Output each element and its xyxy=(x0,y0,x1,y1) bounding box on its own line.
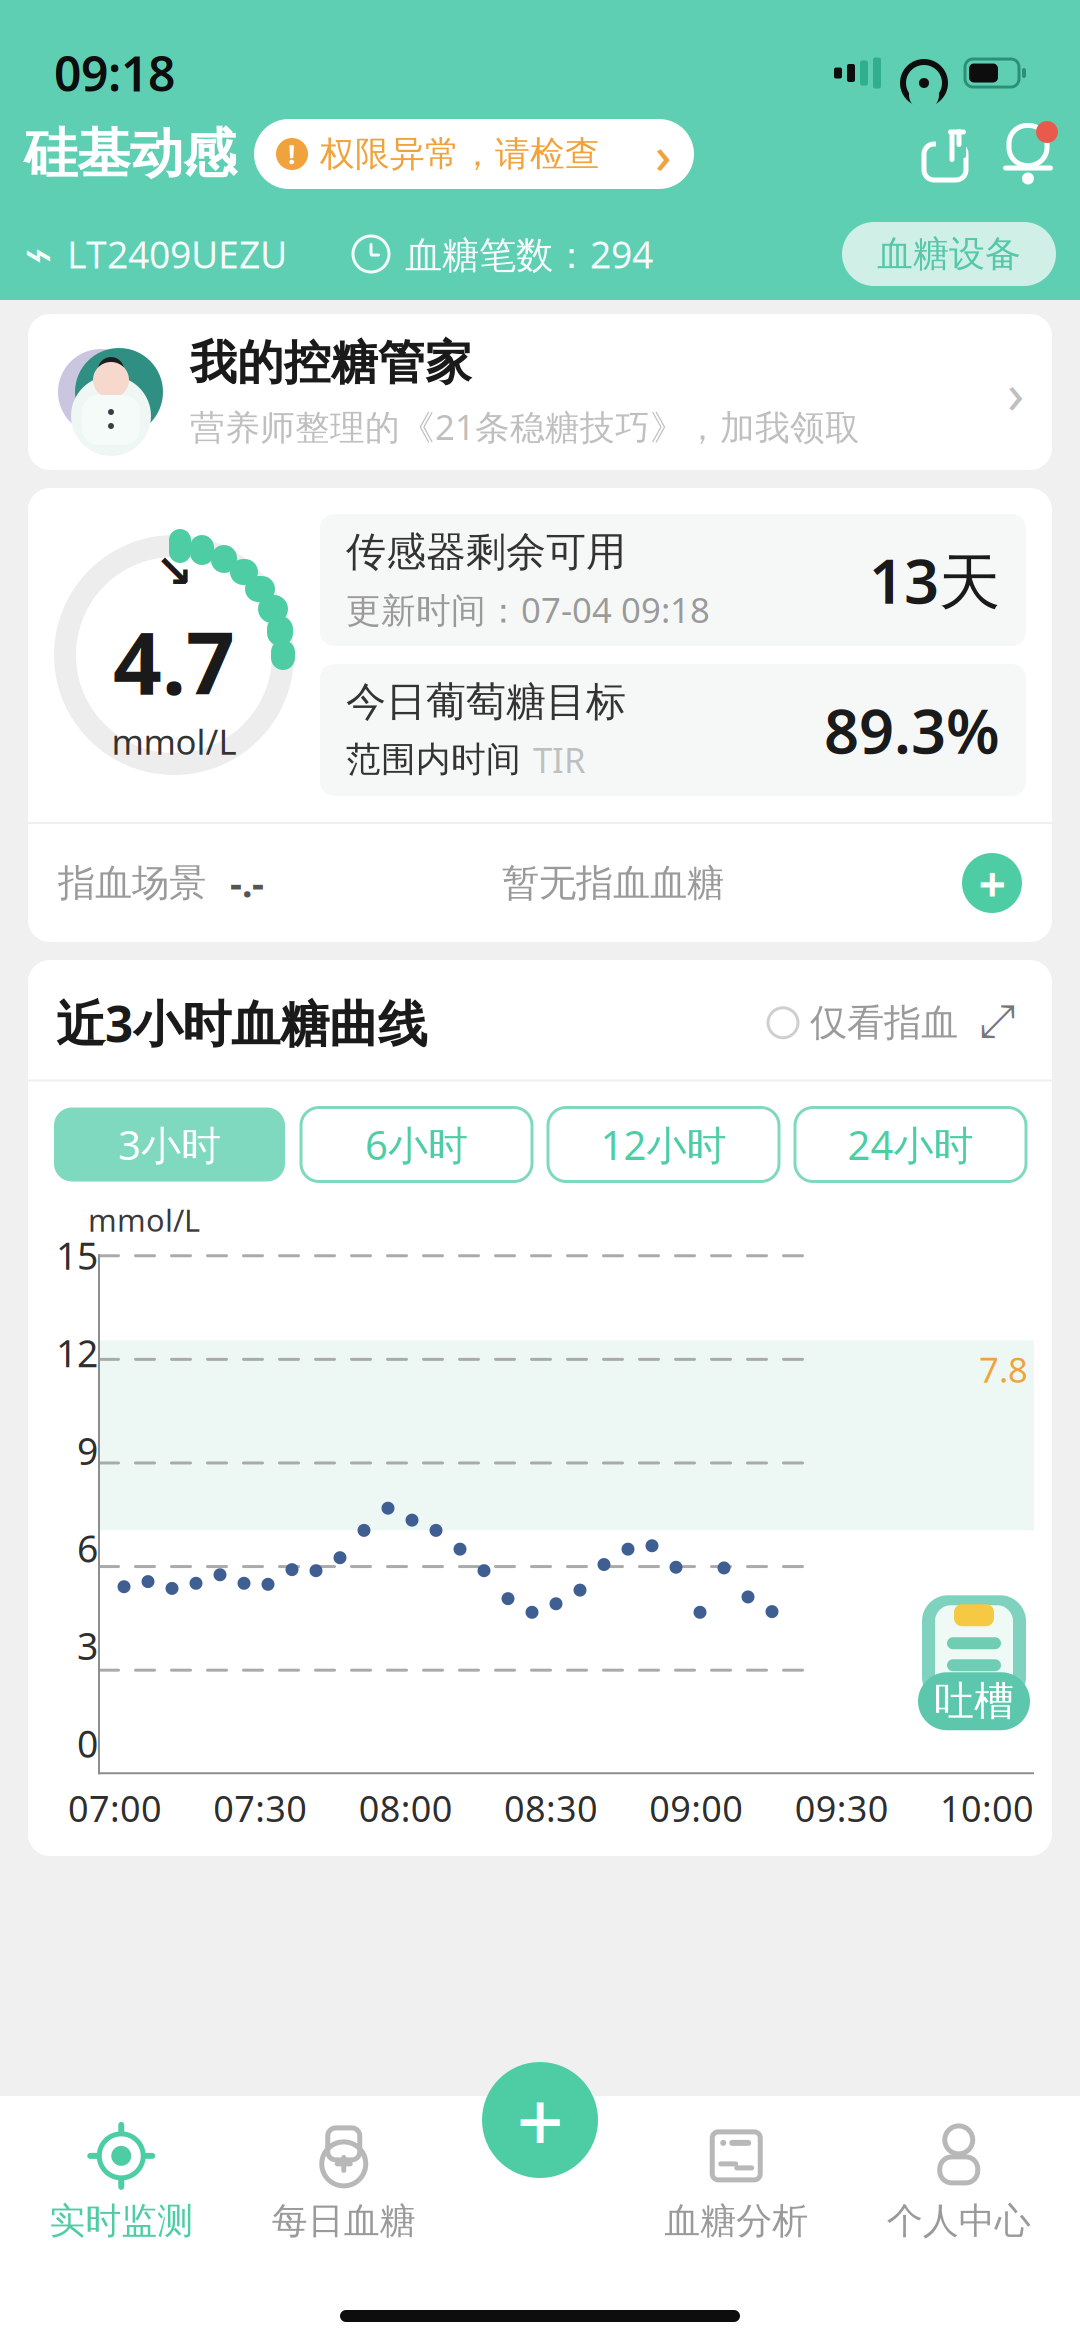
staticText: LT2409UEZU xyxy=(67,229,287,279)
button[interactable]: 通知 xyxy=(1000,124,1056,184)
staticText: 暂无指血血糖 xyxy=(502,860,724,906)
staticText: 10:00 xyxy=(940,1784,1034,1832)
staticText: 今日葡萄糖目标 xyxy=(346,677,626,726)
button[interactable]: 12小时 xyxy=(548,1107,779,1181)
button[interactable]: ! xyxy=(254,119,694,189)
button[interactable]: 我的控糖管家 xyxy=(28,314,1052,470)
staticText: 血糖设备 xyxy=(877,232,1021,276)
staticText: 6小时 xyxy=(365,1118,468,1171)
staticText: ! xyxy=(288,136,296,172)
staticText: 硅基动感 xyxy=(24,121,236,187)
staticText: 血糖分析 xyxy=(664,2199,808,2243)
button[interactable]: 添加记录 xyxy=(482,2062,598,2178)
staticText: 13天 xyxy=(869,539,1000,621)
staticText: 每日血糖 xyxy=(272,2199,416,2243)
staticText: 3 xyxy=(77,1621,98,1670)
button[interactable]: 分享 xyxy=(918,127,972,181)
staticText: TIR xyxy=(533,736,586,782)
staticText: 07:00 xyxy=(68,1784,162,1832)
staticText: 3小时 xyxy=(118,1118,221,1171)
staticText: › xyxy=(655,120,672,188)
staticText: 09:30 xyxy=(795,1784,889,1832)
staticText: 近3小时血糖曲线 xyxy=(56,990,427,1055)
staticText: 4.7 xyxy=(113,605,235,718)
staticText: 12 xyxy=(56,1328,98,1378)
staticText: 08:00 xyxy=(359,1784,453,1832)
staticText: ⌁ xyxy=(24,227,53,281)
staticText: 个人中心 xyxy=(887,2199,1031,2243)
staticText: 12小时 xyxy=(600,1118,726,1171)
button[interactable]: 每日血糖 xyxy=(232,2120,455,2250)
button[interactable]: 仅看指血 xyxy=(768,1000,958,1046)
button[interactable]: 指血场景 xyxy=(28,824,1052,942)
button[interactable]: 实时监测 xyxy=(10,2120,232,2250)
staticText: 24小时 xyxy=(847,1118,973,1171)
staticText: 0 xyxy=(77,1718,98,1768)
staticText: 吐槽 xyxy=(934,1677,1014,1726)
staticText: + xyxy=(978,851,1005,915)
staticText: 09:00 xyxy=(649,1784,743,1832)
staticText: 营养师整理的《21条稳糖技巧》，加我领取 xyxy=(190,404,860,450)
staticText: › xyxy=(1007,355,1024,429)
button[interactable]: 24小时 xyxy=(795,1107,1026,1181)
staticText: 血糖笔数：294 xyxy=(405,229,653,279)
staticText: + xyxy=(516,2065,563,2175)
staticText: 传感器剩余可用 xyxy=(346,527,626,576)
staticText: 89.3% xyxy=(824,689,1000,771)
staticText: 实时监测 xyxy=(49,2199,193,2243)
staticText: 08:30 xyxy=(504,1784,598,1832)
staticText: 权限异常，请检查 xyxy=(320,133,600,175)
staticText: 范围内时间 xyxy=(346,738,521,781)
button[interactable]: 全屏查看 xyxy=(970,996,1024,1050)
staticText: 09:18 xyxy=(54,41,175,105)
staticText: 3.9 xyxy=(979,1610,1028,1656)
staticText: 指血场景 xyxy=(58,860,206,906)
staticText: 更新时间：07-04 09:18 xyxy=(346,586,710,632)
staticText: 7.8 xyxy=(979,1346,1028,1392)
button[interactable]: 血糖分析 xyxy=(625,2120,847,2250)
staticText: 6 xyxy=(77,1523,98,1573)
staticText: 07:30 xyxy=(213,1784,307,1832)
button[interactable]: 吐槽反馈 xyxy=(914,1578,1034,1748)
staticText: 9 xyxy=(77,1426,98,1475)
staticText: mmol/L xyxy=(88,1199,200,1240)
staticText: mmol/L xyxy=(111,718,236,764)
staticText: ⤢ xyxy=(979,1001,1015,1045)
button[interactable]: 6小时 xyxy=(301,1107,532,1181)
staticText: 仅看指血 xyxy=(810,1000,958,1046)
staticText: 我的控糖管家 xyxy=(190,334,472,392)
staticText: 15 xyxy=(56,1230,98,1280)
staticText: ↘ xyxy=(155,546,193,597)
staticText: -.- xyxy=(230,858,264,908)
button[interactable]: 个人中心 xyxy=(847,2120,1070,2250)
button[interactable]: 血糖设备 xyxy=(842,222,1056,286)
button[interactable]: 3小时 xyxy=(54,1107,285,1181)
